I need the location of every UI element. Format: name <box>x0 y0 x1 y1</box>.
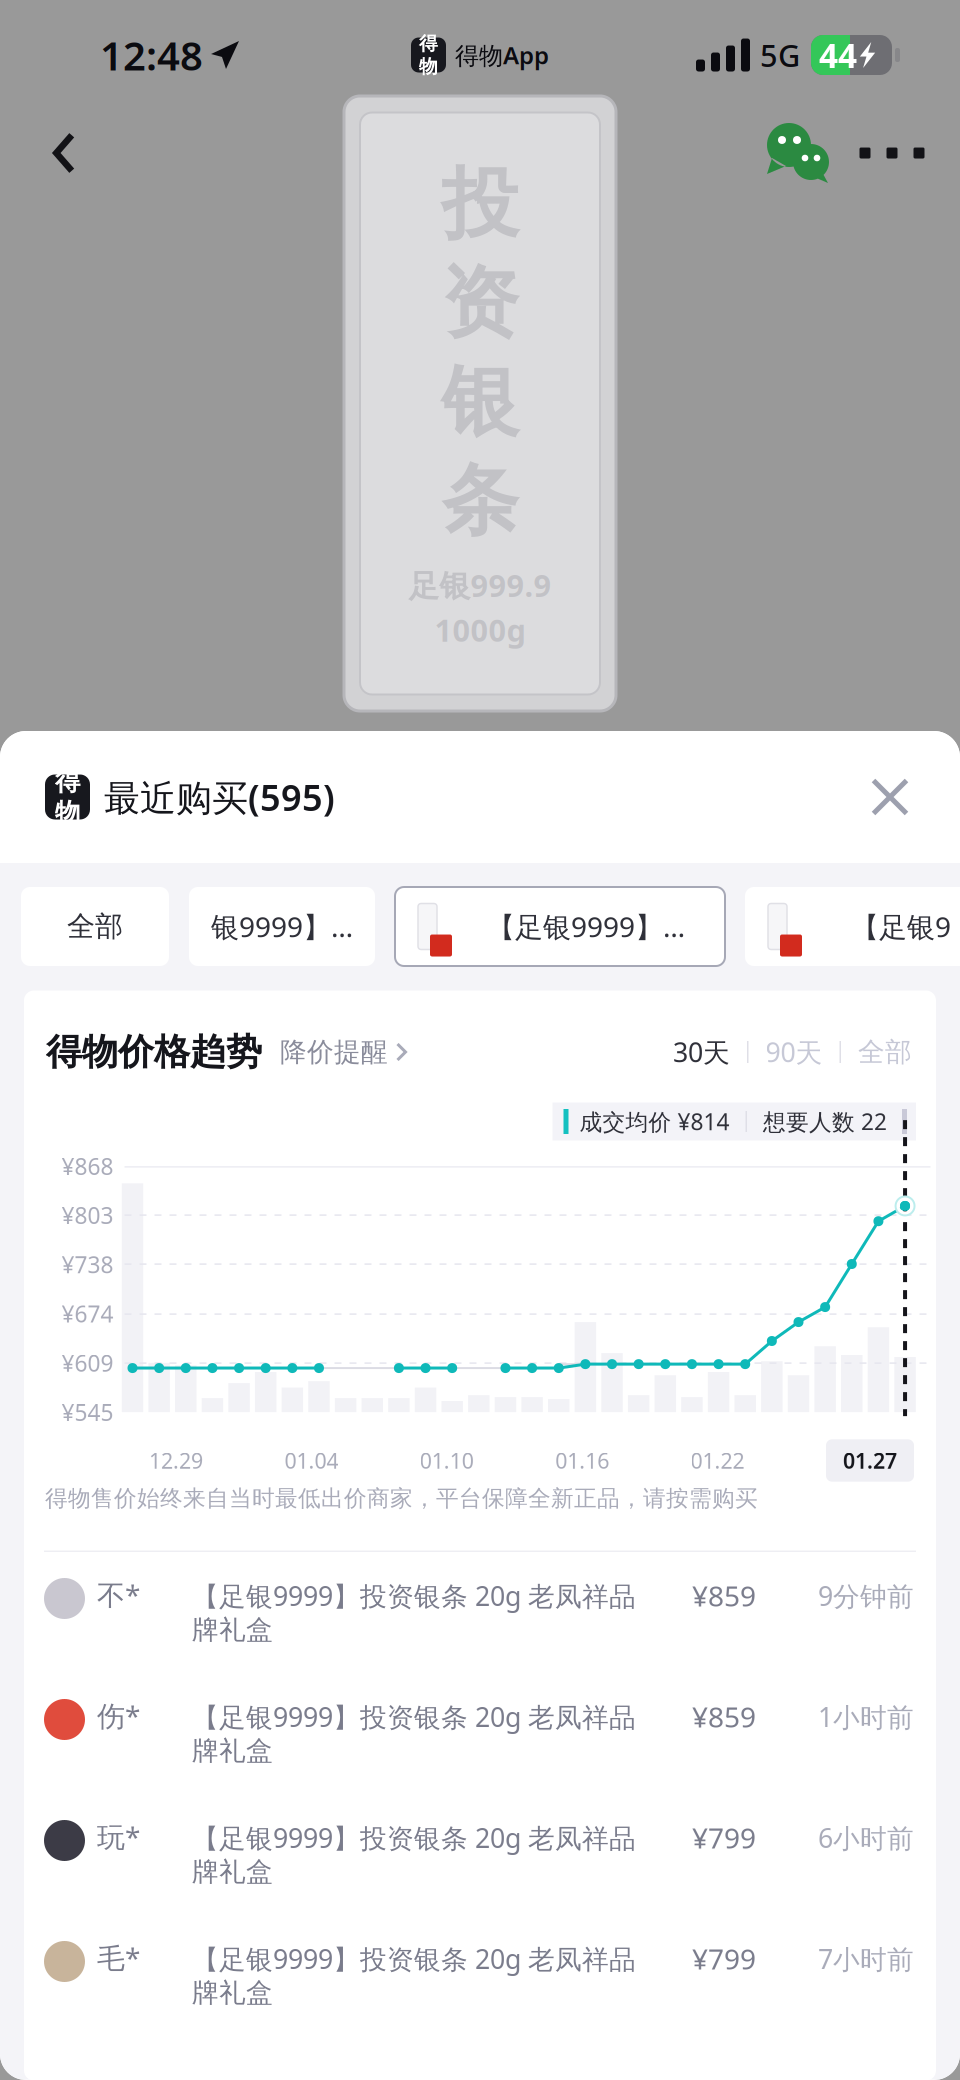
staticText: ¥609 <box>61 1348 113 1378</box>
staticText: 01.27 <box>843 1446 897 1475</box>
staticText: 得物 <box>419 32 438 78</box>
button[interactable]: 90天 <box>748 1034 839 1070</box>
staticText: 7小时前 <box>818 1941 914 1976</box>
staticText: ¥868 <box>61 1151 113 1181</box>
staticText: 30天 <box>673 1034 730 1070</box>
staticText: ¥799 <box>692 1819 756 1856</box>
button[interactable]: 全部 <box>21 887 169 966</box>
staticText: ¥859 <box>692 1577 756 1614</box>
button[interactable]: 玩* <box>24 1794 936 1915</box>
staticText: 足银999.9 <box>408 565 551 605</box>
button[interactable]: 不* <box>24 1552 936 1673</box>
staticText: 不* <box>97 1576 140 1613</box>
staticText: 【足银9999】… <box>487 908 685 945</box>
staticText: 伤* <box>97 1697 140 1734</box>
staticText: 1000g <box>434 609 525 650</box>
staticText: 银9999】… <box>211 908 353 945</box>
staticText: ¥859 <box>692 1698 756 1735</box>
button[interactable]: 降价提醒 <box>262 1036 407 1068</box>
staticText: 5G <box>760 35 800 75</box>
staticText: 最近购买(595) <box>104 773 335 821</box>
staticText: 6小时前 <box>818 1820 914 1855</box>
staticText: 1小时前 <box>818 1699 914 1734</box>
staticText: 9分钟前 <box>818 1578 914 1613</box>
button[interactable]: 全部 <box>841 1036 912 1068</box>
staticText: 【足银9999】投资银条 20g 老凤祥品 牌礼盒 <box>192 1941 636 2009</box>
staticText: 【足银9999】投资银条 20g 老凤祥品 牌礼盒 <box>192 1699 636 1767</box>
staticText: 01.16 <box>555 1446 609 1475</box>
staticText: ¥803 <box>61 1200 113 1230</box>
staticText: ¥738 <box>61 1249 113 1279</box>
staticText: 全部 <box>858 1036 912 1068</box>
staticText: 得物App <box>455 39 549 71</box>
staticText: ¥674 <box>61 1299 113 1329</box>
button[interactable]: 【足银9999】… <box>395 887 725 966</box>
staticText: 12.29 <box>149 1446 203 1475</box>
staticText: 【足银9 <box>851 908 951 945</box>
staticText: 01.04 <box>284 1446 338 1475</box>
button[interactable]: More options <box>846 110 938 196</box>
staticText: 条 <box>441 454 518 549</box>
button[interactable]: Back <box>18 110 110 196</box>
staticText: 想要人数 22 <box>763 1106 887 1136</box>
staticText: 得物售价始终来自当时最低出价商家，平台保障全新正品，请按需购买 <box>45 1484 758 1512</box>
button[interactable]: 伤* <box>24 1673 936 1794</box>
staticText: 投 <box>441 157 518 252</box>
button[interactable]: Close <box>854 761 926 833</box>
staticText: 90天 <box>765 1034 822 1070</box>
button[interactable]: Share to WeChat <box>754 110 846 196</box>
staticText: 12:48 <box>100 28 203 81</box>
staticText: 【足银9999】投资银条 20g 老凤祥品 牌礼盒 <box>192 1578 636 1646</box>
staticText: 01.22 <box>691 1446 745 1475</box>
staticText: 44 <box>819 33 857 77</box>
staticText: 01.10 <box>420 1446 474 1475</box>
staticText: 【足银9999】投资银条 20g 老凤祥品 牌礼盒 <box>192 1820 636 1888</box>
staticText: 玩* <box>97 1818 140 1855</box>
staticText: 毛* <box>97 1939 140 1976</box>
staticText: 得物价格趋势 <box>46 1030 262 1074</box>
button[interactable]: 【足银9 <box>745 887 960 966</box>
button[interactable]: 银9999】… <box>189 887 375 966</box>
button[interactable]: 毛* <box>24 1915 936 2036</box>
staticText: 降价提醒 <box>280 1036 388 1068</box>
button[interactable]: 30天 <box>673 1034 747 1070</box>
staticText: 成交均价 ¥814 <box>579 1106 729 1136</box>
staticText: 资 <box>441 256 518 351</box>
staticText: 全部 <box>67 909 123 944</box>
staticText: ¥545 <box>61 1397 113 1427</box>
staticText: 银 <box>441 355 518 450</box>
staticText: ¥799 <box>692 1940 756 1977</box>
staticText: 得物 <box>55 766 80 828</box>
